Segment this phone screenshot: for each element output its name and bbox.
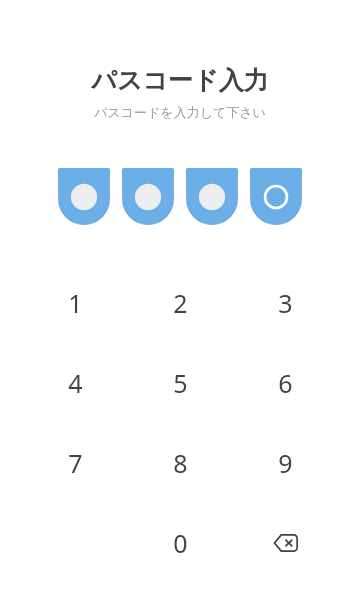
staticText: 7 (68, 446, 83, 480)
button[interactable]: 7 (23, 423, 128, 503)
staticText: 1 (68, 286, 83, 320)
staticText: 4 (68, 366, 83, 400)
button[interactable]: 6 (233, 343, 338, 423)
other: Digit entered (186, 168, 238, 225)
staticText: パスコード入力 (91, 65, 269, 96)
button[interactable]: 2 (128, 263, 233, 343)
staticText: 0 (173, 526, 188, 560)
other: Digit entered (122, 168, 174, 225)
staticText: 3 (278, 286, 293, 320)
button[interactable]: 5 (128, 343, 233, 423)
staticText: パスコードを入力して下さい (94, 104, 266, 120)
other: Digit entered (58, 168, 110, 225)
button[interactable]: 0 (128, 503, 233, 583)
staticText: 9 (278, 446, 293, 480)
button[interactable]: Delete last digit (233, 503, 338, 583)
button[interactable]: 8 (128, 423, 233, 503)
button[interactable]: 3 (233, 263, 338, 343)
button[interactable]: 1 (23, 263, 128, 343)
button[interactable]: 9 (233, 423, 338, 503)
staticText: 6 (278, 366, 293, 400)
button[interactable]: 4 (23, 343, 128, 423)
staticText: 8 (173, 446, 188, 480)
other: Empty digit (250, 168, 302, 225)
staticText: 2 (173, 286, 188, 320)
staticText: 5 (173, 366, 188, 400)
